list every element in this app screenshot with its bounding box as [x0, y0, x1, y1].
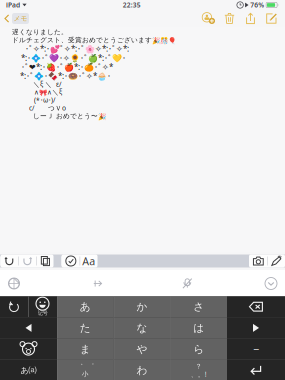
staticText: 記号 — [37, 310, 47, 316]
button[interactable]: メモ — [0, 10, 29, 27]
button[interactable]: た — [57, 318, 114, 338]
staticText: ＼ξ ＼ ε/ — [33, 80, 61, 89]
button[interactable]: わ — [114, 360, 170, 380]
staticText: iPad — [6, 1, 20, 9]
staticText: た — [80, 321, 91, 334]
button[interactable] — [0, 254, 18, 267]
button[interactable]: Symbols — [28, 296, 57, 317]
staticText: c/ つＶo — [29, 104, 66, 112]
staticText: 22:35 — [123, 1, 141, 9]
button[interactable]: Dictation Off — [174, 270, 200, 297]
button[interactable]: Input Mode — [0, 360, 57, 380]
staticText: ∧🎀∧＼ξ — [34, 88, 62, 96]
button[interactable]: ？ — [170, 360, 227, 380]
button[interactable]: Delete — [219, 10, 240, 27]
button[interactable]: New Note — [261, 10, 282, 27]
staticText: − — [253, 342, 259, 356]
staticText: あ — [80, 300, 91, 313]
button[interactable]: Next Keyboard — [1, 270, 27, 297]
button[interactable]: ま — [57, 339, 114, 359]
button[interactable]: Add People — [198, 10, 219, 27]
button[interactable]: Hide Keyboard — [258, 270, 284, 297]
button[interactable]: あ — [57, 296, 114, 317]
staticText: 小 — [82, 370, 89, 378]
button[interactable]: か — [114, 296, 170, 317]
button[interactable] — [36, 254, 54, 267]
button[interactable]: Aa — [79, 254, 97, 267]
button[interactable]: ゛ ゜ — [57, 360, 114, 380]
staticText: *:･💠･ﾟ💜･✧🌻･ﾟ🍏*:･ﾟ💛･ — [21, 53, 126, 63]
button[interactable]: さ — [170, 296, 227, 317]
staticText: は — [193, 321, 204, 334]
button[interactable]: Undo — [0, 296, 28, 317]
staticText: ･ﾟ✧*:･💕ﾟ✧*:･ﾟ🌸✧*:･ﾟ✧*: — [25, 43, 129, 54]
staticText: あ⒜ — [20, 365, 36, 375]
staticText: メモ — [13, 14, 27, 23]
staticText: か — [136, 300, 147, 313]
staticText: や — [136, 342, 147, 356]
staticText: ？ — [195, 362, 202, 370]
staticText: わ — [136, 364, 147, 377]
staticText: ゛ ゜ — [76, 362, 94, 371]
button[interactable]: Delete — [227, 296, 285, 317]
staticText: Aa — [82, 254, 95, 268]
button[interactable]: Tab — [85, 270, 111, 297]
staticText: *:･ﾟ💠･🍫*:･🍩･ﾟ✧*🧁･ — [20, 70, 111, 81]
button[interactable] — [61, 254, 79, 267]
button[interactable]: Stickers — [0, 339, 57, 359]
button[interactable] — [249, 254, 267, 267]
staticText: ら — [193, 342, 204, 356]
button[interactable]: な — [114, 318, 170, 338]
staticText: しーＪ おめでとう〜🎉 — [33, 112, 106, 120]
button[interactable]: Return — [227, 360, 285, 380]
staticText: な — [136, 321, 147, 334]
staticText: ･ﾟ❤*:･🍓･ﾟ🍎*:･🍊･ﾟ✧* — [21, 62, 113, 72]
staticText: (*･ω･)/ — [34, 96, 55, 104]
button[interactable]: Space — [227, 339, 285, 359]
staticText: ドルチェグスト、受賞おめでとうございます🎉🎊🎈 — [12, 36, 176, 44]
button[interactable] — [267, 254, 285, 267]
button[interactable]: ら — [170, 339, 227, 359]
button[interactable]: Move Right — [227, 318, 285, 338]
button[interactable]: Move Left — [0, 318, 57, 338]
button[interactable] — [18, 254, 36, 267]
staticText: 遅くなりました。 — [12, 28, 68, 36]
button[interactable]: Share — [240, 10, 261, 27]
staticText: 、。! — [191, 370, 207, 379]
button[interactable]: は — [170, 318, 227, 338]
staticText: 76% — [250, 1, 264, 9]
staticText: ま — [80, 342, 91, 356]
staticText: さ — [193, 300, 204, 313]
button[interactable]: や — [114, 339, 170, 359]
